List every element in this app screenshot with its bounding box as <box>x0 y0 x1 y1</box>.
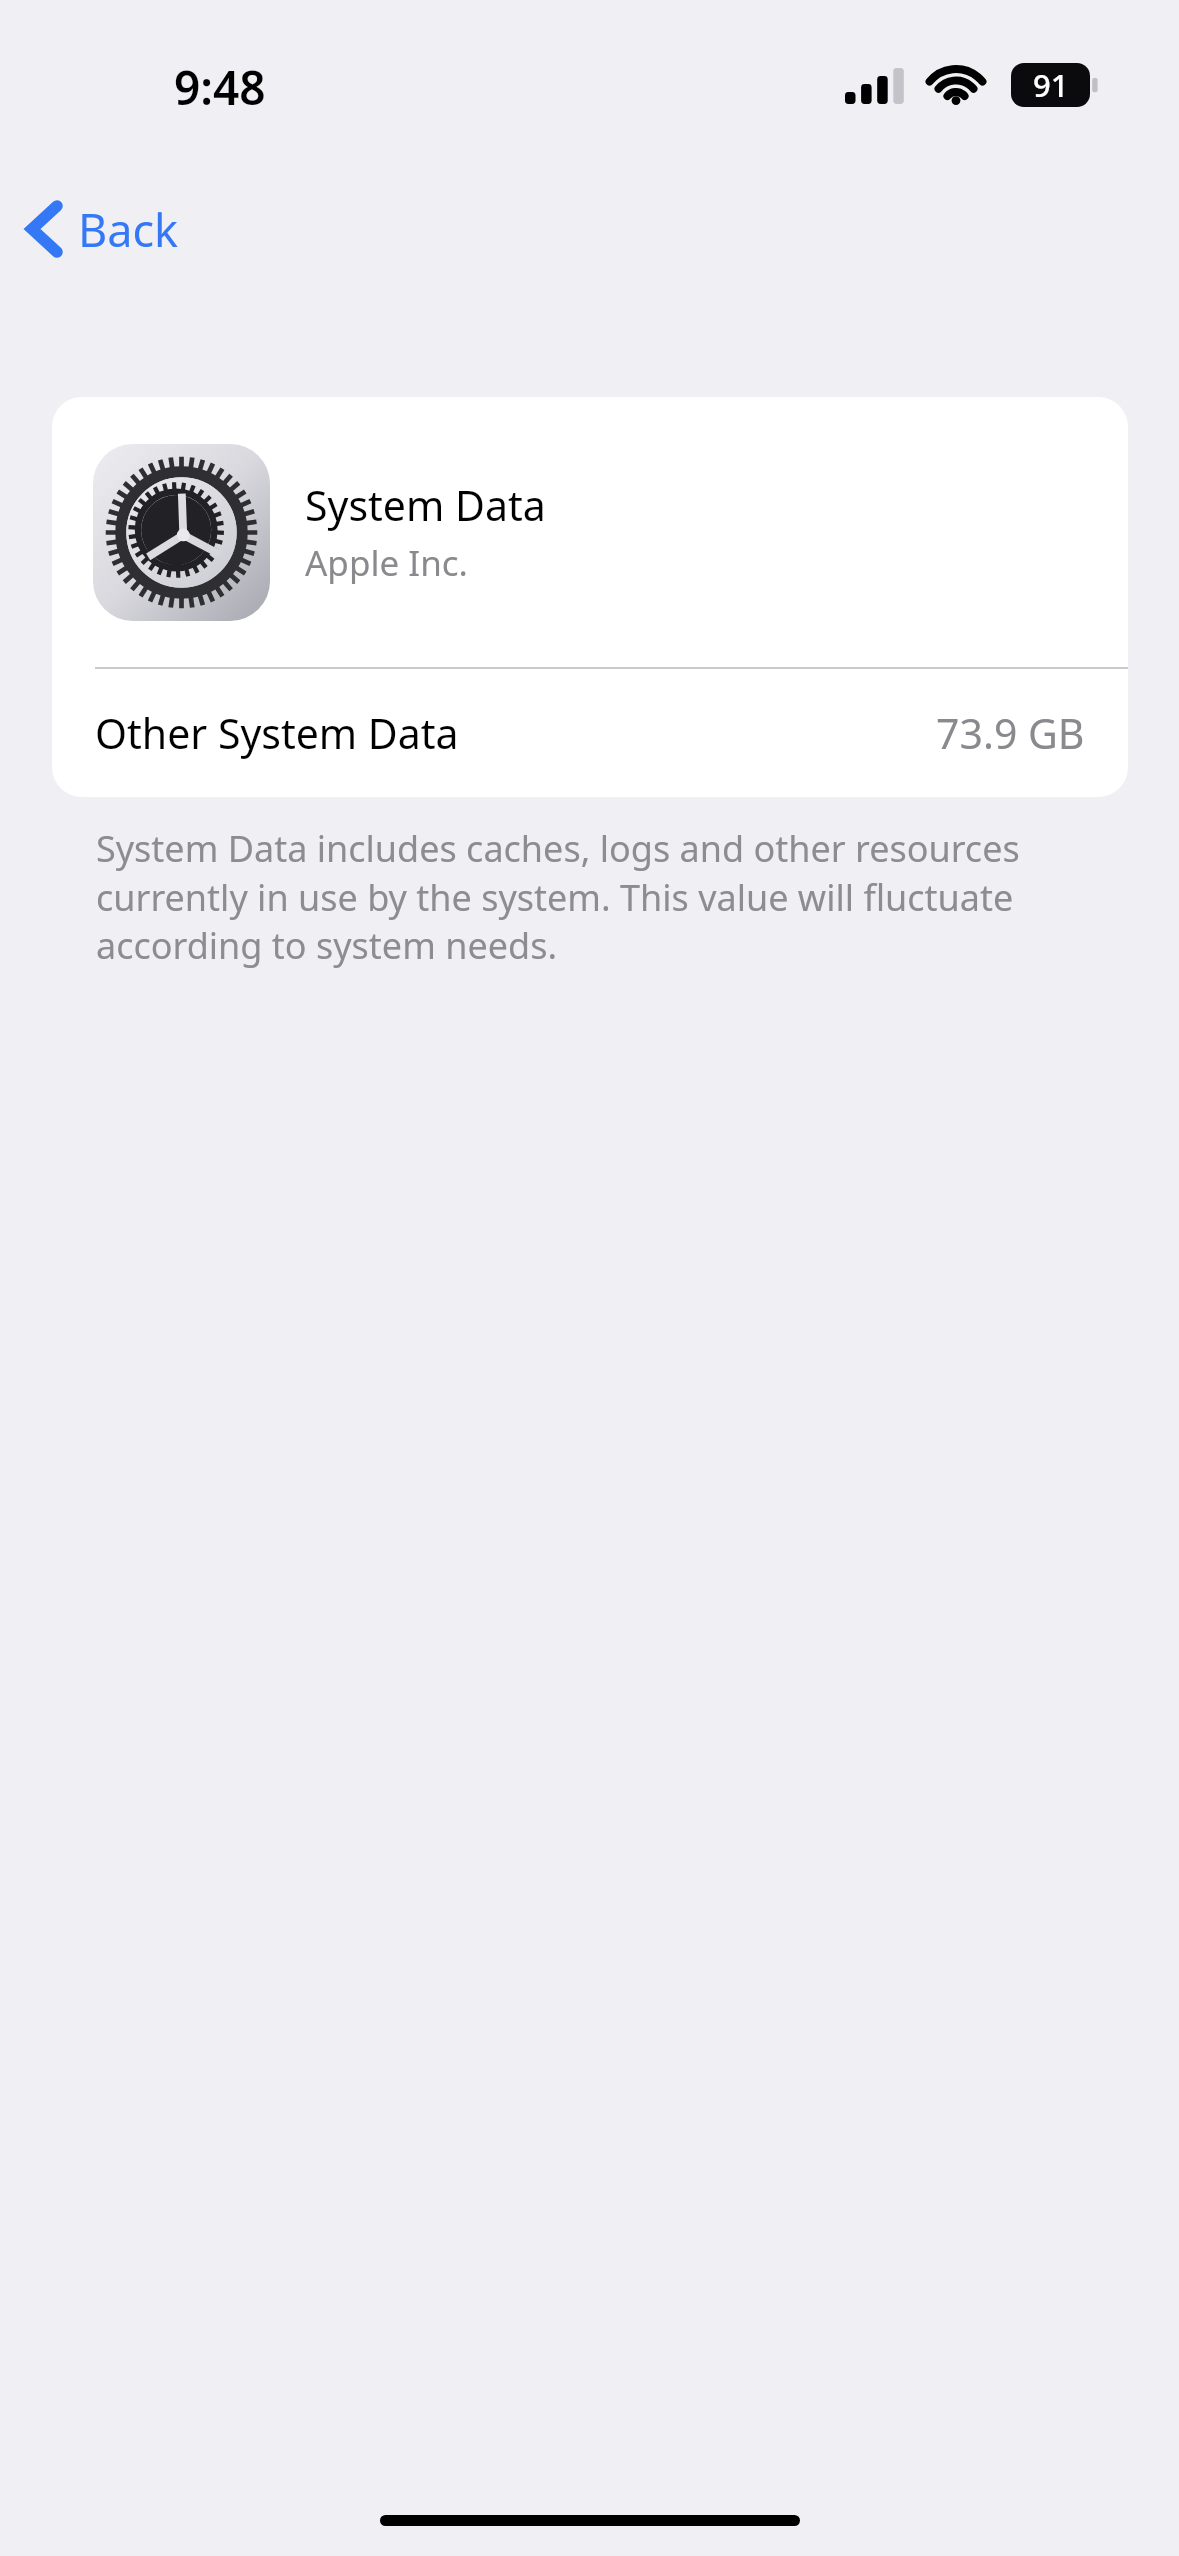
button[interactable]: Other System Data <box>52 669 1128 797</box>
staticText: 73.9 GB <box>936 705 1085 761</box>
button[interactable]: System Data <box>52 397 1128 667</box>
staticText: System Data <box>305 477 546 533</box>
staticText: 9:48 <box>174 56 266 118</box>
staticText: System Data includes caches, logs and ot… <box>96 824 1086 969</box>
staticText: Other System Data <box>95 705 459 761</box>
staticText: Back <box>78 199 179 260</box>
button[interactable]: Back <box>8 184 203 274</box>
staticText: 91 <box>1033 64 1069 106</box>
staticText: Apple Inc. <box>305 539 468 587</box>
